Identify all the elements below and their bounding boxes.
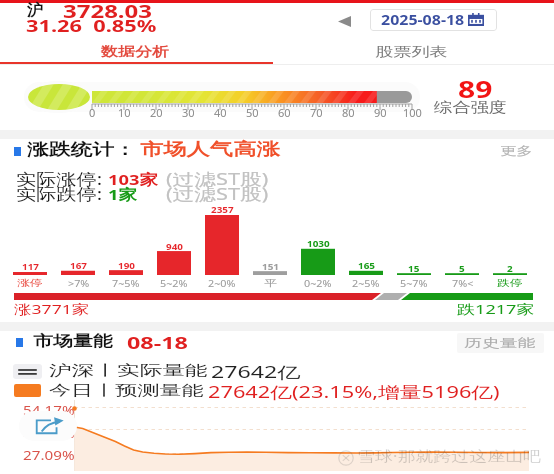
staticText: 市场量能: [33, 332, 113, 351]
staticText: 今日丨预测量能: [49, 382, 204, 400]
staticText: (过滤ST股): [166, 183, 269, 205]
staticText: 89: [458, 72, 493, 105]
staticText: 80: [342, 105, 355, 120]
staticText: 5~2%: [160, 277, 188, 289]
staticText: 市场人气高涨: [140, 139, 280, 160]
staticText: (过滤ST股): [166, 168, 269, 190]
staticText: 雪球·那就跨过这座山吧: [357, 446, 541, 465]
staticText: 40.63%: [23, 424, 76, 442]
staticText: 151: [262, 260, 280, 272]
staticText: 5: [459, 262, 466, 274]
staticText: 涨3771家: [14, 300, 90, 318]
button[interactable]: [457, 333, 544, 353]
staticText: 30: [182, 105, 195, 120]
button[interactable]: [496, 143, 536, 159]
staticText: 940: [166, 240, 184, 252]
staticText: 27642亿: [211, 361, 301, 383]
staticText: 54.17%: [23, 401, 76, 419]
staticText: 90: [374, 105, 387, 120]
staticText: 涨停: [17, 277, 43, 288]
staticText: 更多: [500, 143, 533, 158]
staticText: 165: [358, 259, 376, 271]
staticText: 跌1217家: [457, 300, 535, 318]
staticText: 数据分析: [101, 43, 169, 59]
staticText: 实际涨停:: [16, 168, 103, 190]
staticText: 股票列表: [375, 43, 448, 59]
staticText: 40: [214, 105, 227, 120]
staticText: 平: [264, 277, 277, 288]
staticText: 2025-08-18: [381, 10, 465, 29]
staticText: 08-18: [127, 332, 188, 354]
staticText: 70: [310, 105, 323, 120]
staticText: >7%: [68, 277, 90, 289]
staticText: 5~7%: [400, 277, 428, 289]
staticText: 0: [89, 105, 96, 120]
staticText: 27642亿(23.15%,增量5196亿): [208, 381, 500, 403]
staticText: 167: [70, 259, 88, 271]
staticText: 31.26 0.85%: [26, 15, 157, 37]
staticText: 2: [507, 262, 514, 274]
staticText: 1家: [108, 184, 137, 204]
staticText: 190: [118, 259, 136, 271]
staticText: 0~2%: [304, 277, 332, 289]
staticText: 跌停: [497, 277, 523, 288]
button[interactable]: [277, 38, 554, 62]
staticText: 2~0%: [208, 277, 236, 289]
button[interactable]: [370, 9, 497, 31]
staticText: 15: [408, 262, 420, 274]
staticText: 历史量能: [464, 335, 535, 350]
staticText: 涨跌统计：: [27, 140, 136, 160]
staticText: 103家: [108, 169, 158, 189]
staticText: 10: [118, 105, 131, 120]
staticText: 50: [246, 105, 259, 120]
staticText: 27.09%: [23, 446, 76, 464]
staticText: 3728.03: [63, 0, 153, 23]
staticText: 7~5%: [112, 277, 140, 289]
staticText: 2~5%: [352, 277, 380, 289]
staticText: 1030: [307, 237, 330, 249]
staticText: 2357: [211, 203, 234, 215]
staticText: 117: [22, 260, 40, 272]
staticText: 100: [403, 105, 422, 120]
button[interactable]: [0, 38, 277, 62]
staticText: 综合强度: [434, 99, 507, 117]
button[interactable]: Previous day: [332, 11, 356, 31]
staticText: 沪深丨实际量能: [49, 362, 208, 380]
staticText: 沪: [27, 1, 43, 20]
staticText: 7%<: [452, 277, 474, 289]
staticText: 20: [150, 105, 163, 120]
staticText: 60: [278, 105, 291, 120]
button[interactable]: Share: [19, 411, 77, 441]
staticText: 实际跌停:: [16, 183, 103, 205]
